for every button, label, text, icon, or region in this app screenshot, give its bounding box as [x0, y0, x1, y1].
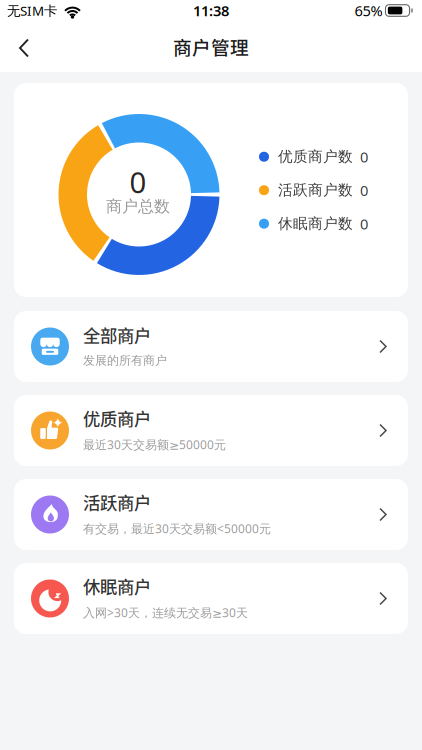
staticText: 休眠商户数 [278, 215, 353, 233]
staticText: 0 [129, 162, 146, 201]
staticText: 0 [360, 214, 368, 233]
staticText: 65% [354, 1, 382, 20]
staticText: 最近30天交易额≥50000元 [83, 437, 226, 452]
staticText: 入网>30天，连续无交易≥30天 [83, 605, 248, 620]
staticText: 商户管理 [173, 33, 249, 60]
staticText: 休眠商户 [83, 573, 151, 599]
button[interactable]: Back [0, 29, 29, 64]
staticText: 11:38 [193, 1, 229, 20]
staticText: 发展的所有商户 [83, 353, 167, 368]
staticText: 活跃商户数 [278, 181, 353, 199]
button[interactable]: 优质商户 [14, 395, 408, 466]
staticText: 0 [360, 147, 368, 166]
staticText: 有交易，最近30天交易额<50000元 [83, 521, 271, 536]
staticText: 全部商户 [83, 322, 151, 347]
staticText: 0 [360, 180, 368, 200]
button[interactable]: 活跃商户 [14, 479, 408, 550]
button[interactable]: 全部商户 [14, 311, 408, 382]
staticText: 优质商户数 [278, 148, 353, 166]
staticText: 优质商户 [83, 405, 151, 431]
button[interactable]: 休眠商户 [14, 563, 408, 634]
staticText: 商户总数 [106, 197, 170, 216]
staticText: 无SIM卡 [7, 2, 57, 19]
staticText: 活跃商户 [83, 489, 151, 515]
